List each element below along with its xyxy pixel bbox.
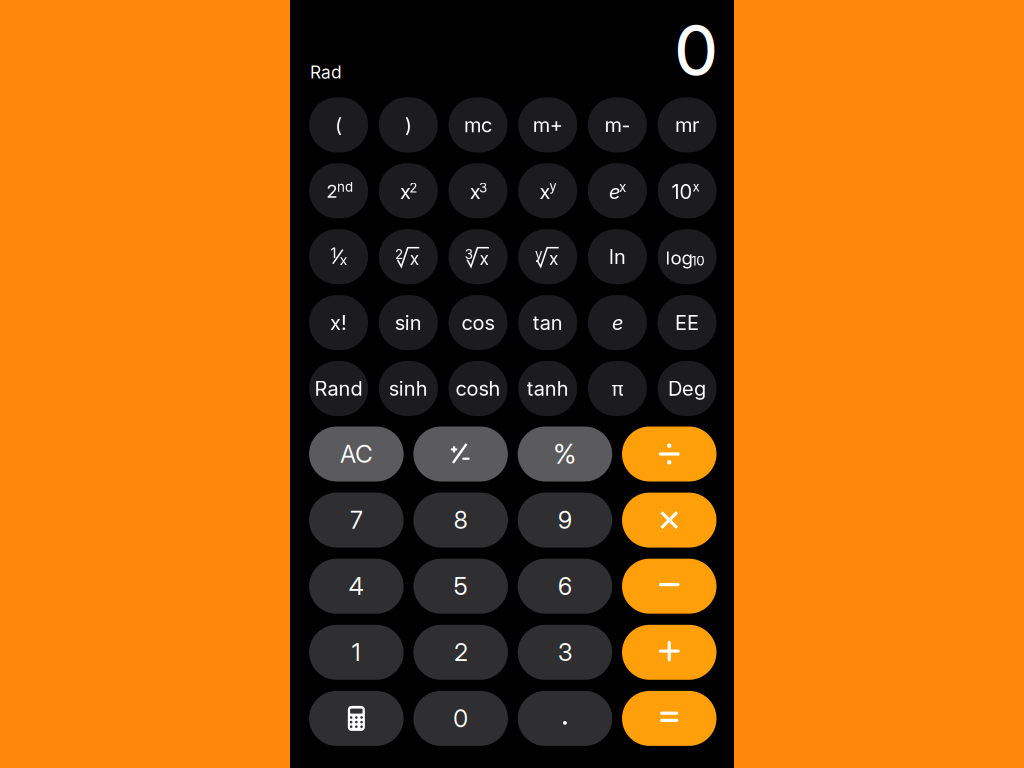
button[interactable]: mr [658,97,717,152]
staticText: nd [337,179,353,195]
button[interactable]: Divide [622,426,716,481]
staticText: x [410,248,419,269]
button[interactable]: log base 10 [658,229,717,284]
staticText: x [693,179,700,195]
button[interactable]: tan [518,295,577,350]
staticText: 10 [672,180,693,204]
button[interactable]: Deg [658,361,717,416]
staticText: 2 [326,180,337,202]
button[interactable]: x cubed [448,163,507,218]
staticText: tanh [527,376,569,401]
button[interactable]: 3 [518,625,612,680]
staticText: cos [461,310,494,335]
staticText: cosh [455,376,500,401]
button[interactable]: 7 [309,493,404,548]
staticText: 5 [454,572,468,601]
button[interactable]: y root of x [518,229,577,284]
staticText: m+ [533,113,563,137]
button[interactable]: ln [588,229,647,284]
button[interactable]: sinh [379,361,438,416]
staticText: 2 [409,180,417,196]
staticText: 0 [453,704,468,733]
button[interactable]: AC [309,426,404,481]
button[interactable]: Second function [309,163,368,218]
button[interactable]: ( [309,97,368,152]
button[interactable]: EE [658,295,717,350]
staticText: AC [340,439,372,468]
staticText: 7 [350,506,362,535]
button[interactable]: 3 root of x [448,229,507,284]
button[interactable]: sin [379,295,438,350]
staticText: x [479,248,488,269]
button[interactable]: cosh [448,361,507,416]
button[interactable]: 4 [309,559,404,614]
button[interactable]: ) [379,97,438,152]
staticText: Rand [315,376,363,401]
staticText: x [340,251,348,269]
button[interactable]: 9 [518,493,612,548]
button[interactable]: x! [309,295,368,350]
staticText: e [609,180,620,204]
staticText: 3 [558,638,572,667]
staticText: x [400,180,411,204]
button[interactable]: ten to the x [658,163,717,218]
button[interactable]: Rand [309,361,368,416]
staticText: 6 [558,572,572,601]
button[interactable]: e to the x [588,163,647,218]
button[interactable]: 8 [413,493,508,548]
staticText: ( [335,113,342,137]
staticText: 3 [465,246,473,262]
button[interactable]: Plus minus [413,426,508,481]
button[interactable]: e [588,295,647,350]
button[interactable]: Equals [622,691,716,746]
button[interactable]: Minus [622,559,716,614]
staticText: 10 [691,253,704,269]
staticText: Deg [668,376,706,401]
button[interactable]: 2 [413,625,508,680]
staticText: y [535,246,542,262]
button[interactable]: π [588,361,647,416]
staticText: mc [464,113,492,137]
staticText: 9 [558,506,572,535]
staticText: x [539,180,550,204]
button[interactable]: Multiply [622,493,716,548]
staticText: Rad [310,62,342,83]
staticText: tan [533,310,563,335]
staticText: sin [395,310,422,335]
button[interactable]: x squared [379,163,438,218]
staticText: log [666,246,693,269]
staticText: 2 [395,246,403,262]
staticText: ) [405,113,412,137]
staticText: e [612,310,623,335]
staticText: mr [675,113,699,137]
staticText: 1 [352,638,361,667]
button[interactable]: tanh [518,361,577,416]
button[interactable]: x to the y [518,163,577,218]
button[interactable]: 0 [413,691,508,746]
button[interactable]: 6 [518,559,612,614]
staticText: x [549,248,558,269]
button[interactable]: 5 [413,559,508,614]
button[interactable]: m- [588,97,647,152]
button[interactable]: % [518,426,612,481]
button[interactable]: Plus [622,625,716,680]
staticText: y [549,178,556,194]
staticText: x [619,179,626,195]
button[interactable]: 2 root of x [379,229,438,284]
button[interactable]: mc [448,97,507,152]
button[interactable]: Decimal point [518,691,612,746]
staticText: 2 [454,638,467,667]
button[interactable]: 1 [309,625,404,680]
staticText: 8 [454,506,468,535]
staticText: ln [609,245,626,269]
button[interactable]: m+ [518,97,577,152]
staticText: 0 [675,10,717,91]
button[interactable]: Basic calculator [309,691,404,746]
staticText: m- [604,113,630,137]
button[interactable]: cos [448,295,507,350]
staticText: 4 [349,572,364,601]
staticText: % [553,438,576,470]
staticText: sinh [389,376,428,401]
button[interactable]: one over x [309,229,368,284]
staticText: 3 [479,180,487,196]
